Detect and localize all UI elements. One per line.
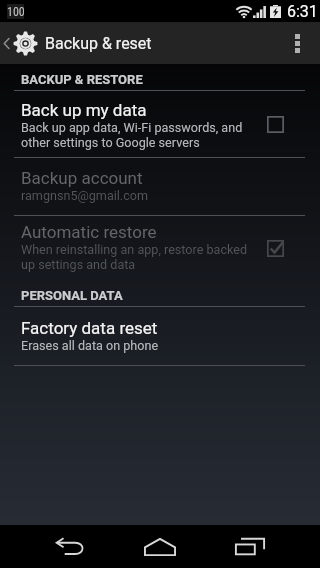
button[interactable]: Navigate up bbox=[0, 22, 43, 64]
button[interactable]: Back bbox=[47, 525, 93, 568]
staticText: Backup & reset bbox=[45, 34, 152, 53]
button[interactable]: Backup account bbox=[0, 158, 320, 215]
staticText: Automatic restore bbox=[21, 222, 157, 242]
button[interactable]: More options bbox=[280, 22, 314, 64]
button[interactable]: Factory data reset bbox=[0, 307, 320, 365]
staticText: Erases all data on phone bbox=[21, 338, 159, 353]
staticText: PERSONAL DATA bbox=[21, 288, 123, 303]
staticText: 100 bbox=[7, 5, 25, 19]
staticText: Factory data reset bbox=[21, 318, 158, 338]
button[interactable]: Toggle bbox=[260, 109, 290, 139]
staticText: Backup account bbox=[21, 168, 143, 188]
staticText: BACKUP & RESTORE bbox=[21, 72, 143, 87]
button[interactable]: Automatic restore bbox=[0, 216, 320, 280]
staticText: Back up my data bbox=[21, 100, 147, 120]
button[interactable]: Recent apps bbox=[227, 525, 273, 568]
button[interactable]: Home bbox=[137, 525, 183, 568]
staticText: ramgnsn5@gmail.com bbox=[21, 188, 149, 203]
button[interactable]: Back up my data bbox=[0, 91, 320, 157]
staticText: When reinstalling an app, restore backed… bbox=[21, 242, 248, 272]
staticText: Back up app data, Wi-Fi passwords, and o… bbox=[21, 120, 243, 150]
staticText: 6:31 bbox=[287, 2, 318, 21]
button[interactable]: Toggle bbox=[260, 233, 290, 263]
